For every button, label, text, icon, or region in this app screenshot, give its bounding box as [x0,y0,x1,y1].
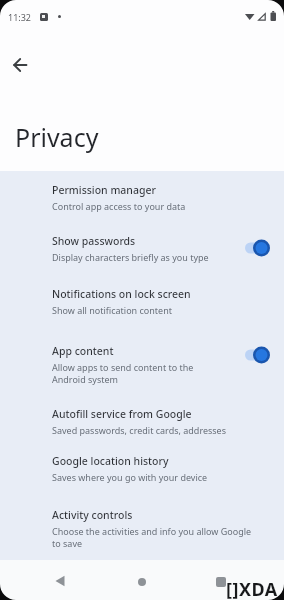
staticText: Allow apps to send content to the Androi… [52,361,194,385]
button[interactable] [240,343,276,367]
button[interactable] [240,236,276,260]
button[interactable]: Google location history [0,453,284,487]
button[interactable] [205,566,237,598]
button[interactable]: App content [0,343,284,390]
staticText: Control app access to your data [52,200,186,212]
staticText: Show all notification content [52,304,172,316]
button[interactable]: Autofill service from Google [0,406,284,440]
staticText: Show passwords [52,234,136,248]
staticText: Choose the activities and info you allow… [52,525,252,549]
button[interactable]: Permission manager [0,182,284,216]
staticText: 11:32 [8,11,32,23]
button[interactable] [126,566,158,598]
staticText: Privacy [15,120,99,154]
staticText: Autofill service from Google [52,407,192,421]
staticText: Google location history [52,454,169,468]
staticText: Display characters briefly as you type [52,251,209,263]
button[interactable]: Show passwords [0,233,284,267]
button[interactable] [44,565,76,597]
staticText: []XDA [226,577,278,600]
staticText: Activity controls [52,508,133,522]
button[interactable]: Notifications on lock screen [0,286,284,320]
staticText: App content [52,344,114,358]
staticText: Saved passwords, credit cards, addresses [52,424,226,436]
button[interactable] [2,47,38,83]
staticText: Saves where you go with your device [52,471,208,483]
staticText: Permission manager [52,183,156,197]
staticText: Notifications on lock screen [52,287,191,301]
button[interactable]: Activity controls [0,507,284,554]
